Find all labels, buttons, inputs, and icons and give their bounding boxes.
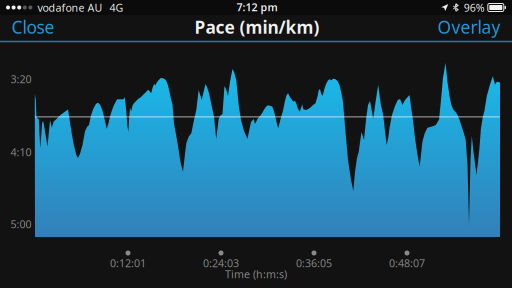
staticText: Time (h:m:s) [225,267,287,281]
staticText: 3:20 [10,72,31,86]
staticText: Close [11,15,54,38]
staticText: 7:12 pm [236,0,277,14]
staticText: 0:24:03 [203,256,239,270]
staticText: 96% [464,0,485,15]
staticText: 0:48:07 [389,256,425,270]
staticText: 0:36:05 [296,256,332,270]
staticText: 4G [109,0,123,15]
staticText: vodafone AU [37,0,102,15]
staticText: Overlay [437,15,500,38]
button[interactable]: Overlay [434,14,504,40]
staticText: 4:10 [10,145,31,159]
staticText: 5:00 [10,217,31,231]
button[interactable]: Close [9,14,57,40]
staticText: 0:12:01 [110,256,146,270]
staticText: Pace (min/km) [194,15,319,38]
